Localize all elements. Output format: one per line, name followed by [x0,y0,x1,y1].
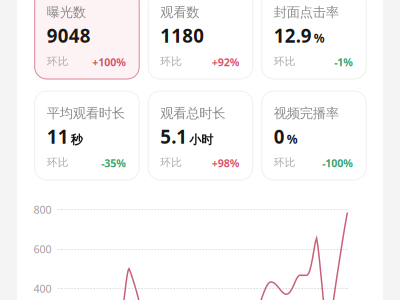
staticText: 环比 [160,55,182,68]
staticText: 小时 [189,132,213,147]
button[interactable]: 封面点击率 [262,0,366,79]
staticText: 5.1 [160,124,187,149]
staticText: 12.9 [274,23,312,48]
staticText: +98% [212,156,240,170]
button[interactable]: 观看总时长 [148,91,253,180]
staticText: +92% [212,55,240,69]
staticText: -1% [334,55,353,69]
staticText: 11 [47,124,69,149]
staticText: 观看总时长 [160,105,225,121]
staticText: 曝光数 [47,4,86,20]
button[interactable]: 曝光数 [35,0,139,79]
staticText: % [314,30,325,46]
staticText: 封面点击率 [274,4,339,20]
staticText: 秒 [71,132,83,147]
staticText: +100% [92,55,126,69]
staticText: 环比 [47,156,69,169]
staticText: 平均观看时长 [47,105,125,121]
staticText: 环比 [160,156,182,169]
staticText: 观看数 [160,4,199,20]
staticText: -35% [101,156,126,170]
staticText: 600 [33,242,51,256]
staticText: 1180 [160,23,204,48]
button[interactable]: 平均观看时长 [35,91,139,180]
button[interactable]: 观看数 [148,0,253,79]
staticText: 800 [33,202,51,217]
staticText: 0 [274,124,285,149]
staticText: 环比 [274,55,296,68]
staticText: 9048 [47,23,91,48]
staticText: 视频完播率 [274,105,339,121]
staticText: % [287,131,298,147]
button[interactable]: 视频完播率 [262,91,366,180]
staticText: 环比 [47,55,69,68]
staticText: 400 [33,281,51,296]
staticText: 环比 [274,156,296,169]
staticText: -100% [322,156,353,170]
